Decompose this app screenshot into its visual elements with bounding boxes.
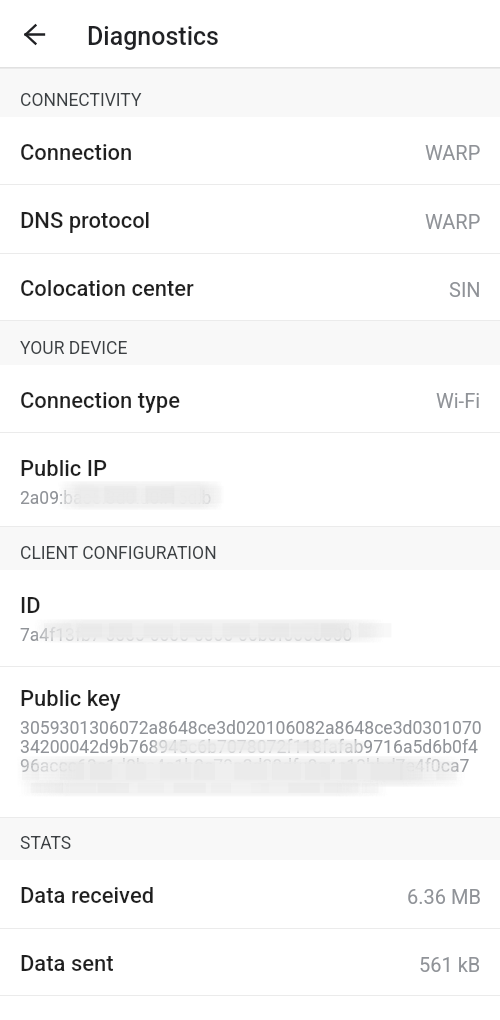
button[interactable]: Connection [0,117,500,185]
staticText: Data received [20,883,155,909]
staticText: WARP [425,141,481,164]
button[interactable]: Connection type [0,365,500,433]
staticText: ID [20,593,41,619]
staticText: 561 kB [419,953,481,976]
staticText: Colocation center [20,276,194,302]
staticText: Wi-Fi [436,389,481,412]
staticText: 2a09:bac5:3d0:d0::15d:b [20,488,212,509]
staticText: CLIENT CONFIGURATION [20,543,217,564]
button[interactable]: Back [10,10,58,58]
button[interactable]: DNS protocol [0,185,500,254]
staticText: WARP [425,210,481,233]
staticText: Connection type [20,388,180,414]
button[interactable]: Data sent [0,929,500,996]
button[interactable]: Public IP [0,433,500,527]
button[interactable]: Data received [0,860,500,929]
staticText: 7a4f13fb7-0000-0000-0000-00b0f0000000 [20,625,353,646]
staticText: Connection [20,140,133,166]
staticText: Public IP [20,456,108,482]
button[interactable]: Public key [0,667,500,818]
staticText: 3059301306072a8648ce3d020106082a8648ce3d… [20,718,484,776]
staticText: Data sent [20,951,114,977]
staticText: DNS protocol [20,208,151,234]
staticText: Public key [20,686,121,712]
button[interactable]: ID [0,570,500,667]
staticText: Diagnostics [87,22,219,51]
staticText: YOUR DEVICE [20,338,128,359]
staticText: 6.36 MB [407,885,481,908]
staticText: STATS [20,833,72,854]
button[interactable]: Colocation center [0,254,500,321]
staticText: CONNECTIVITY [20,90,142,111]
staticText: SIN [449,278,481,301]
